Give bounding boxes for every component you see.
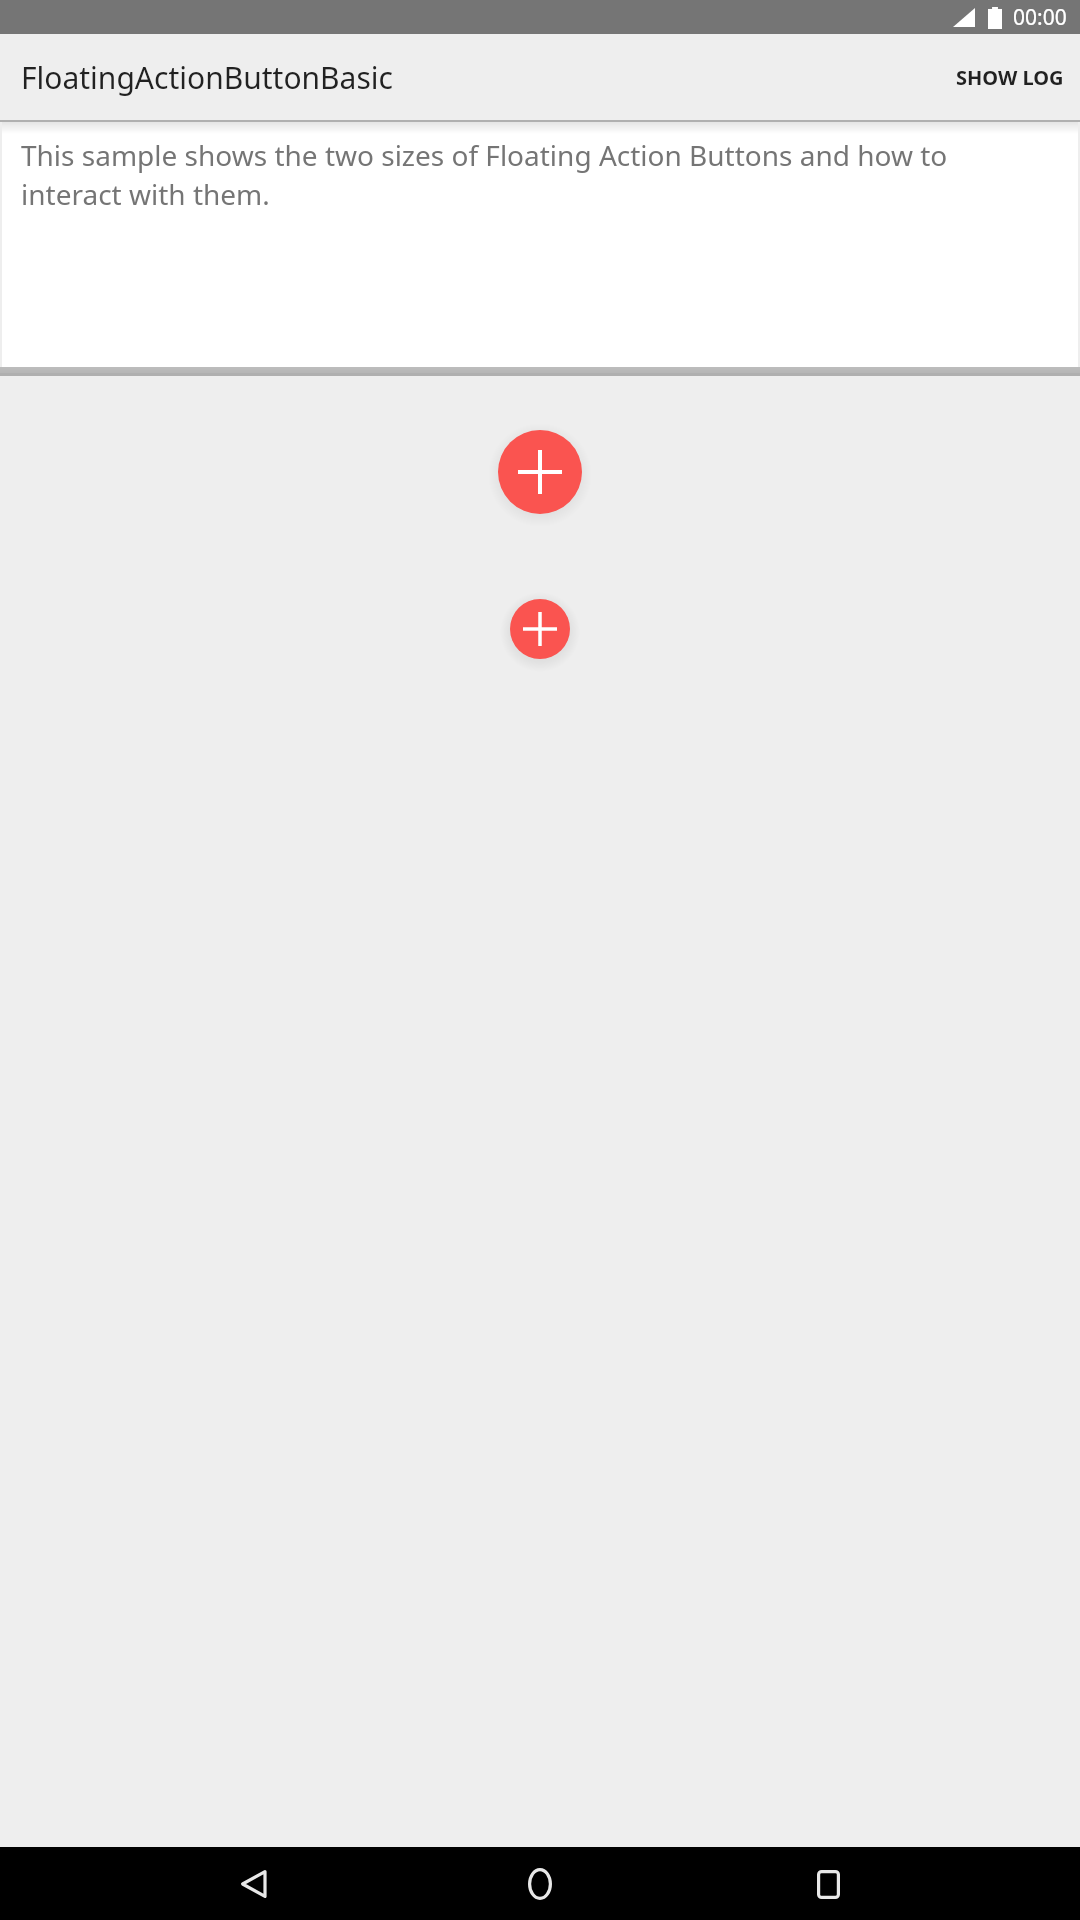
- button[interactable]: Add: [498, 430, 582, 514]
- staticText: FloatingActionButtonBasic: [21, 57, 393, 98]
- button[interactable]: Add small: [510, 599, 570, 659]
- button[interactable]: Back: [218, 1849, 288, 1919]
- staticText: This sample shows the two sizes of Float…: [21, 136, 1054, 213]
- button[interactable]: Recent apps: [793, 1849, 863, 1919]
- button[interactable]: Home: [505, 1849, 575, 1919]
- staticText: SHOW LOG: [956, 64, 1064, 91]
- button[interactable]: SHOW LOG: [940, 50, 1080, 105]
- staticText: 00:00: [1013, 3, 1067, 32]
